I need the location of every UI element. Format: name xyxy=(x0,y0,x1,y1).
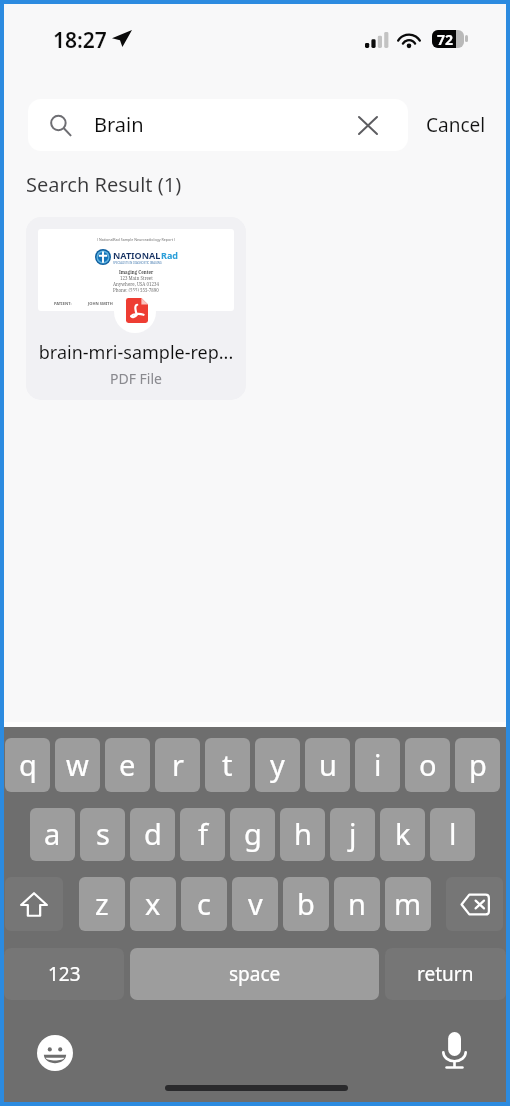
staticText: p xyxy=(469,745,487,784)
button[interactable]: a xyxy=(30,808,75,861)
staticText: u xyxy=(319,745,337,784)
staticText: w xyxy=(66,745,89,784)
button[interactable]: ( NationalRad Sample Neuroradiology Repo… xyxy=(26,217,246,400)
staticText: Anywhere, USA 01234 xyxy=(113,281,159,287)
button[interactable]: Clear search xyxy=(352,109,384,141)
staticText: v xyxy=(248,884,263,923)
staticText: n xyxy=(348,884,366,923)
staticText: 123 xyxy=(48,961,81,987)
staticText: g xyxy=(244,814,262,853)
button[interactable]: p xyxy=(455,738,500,792)
staticText: f xyxy=(198,814,208,853)
button[interactable]: v xyxy=(232,877,278,931)
staticText: PDF File xyxy=(26,369,246,388)
button[interactable]: 123 xyxy=(4,948,124,1000)
button[interactable]: q xyxy=(5,738,50,792)
staticText: JOHN SMITH xyxy=(88,301,113,306)
button[interactable]: j xyxy=(330,808,375,861)
button[interactable]: o xyxy=(405,738,450,792)
button[interactable]: d xyxy=(130,808,175,861)
button[interactable]: z xyxy=(79,877,125,931)
button[interactable]: Backspace xyxy=(446,877,503,931)
button[interactable]: Emoji keyboard xyxy=(37,1035,73,1071)
staticText: NATIONAL xyxy=(113,249,161,261)
button[interactable]: e xyxy=(105,738,150,792)
staticText: l xyxy=(449,814,457,853)
staticText: d xyxy=(144,814,162,853)
staticText: 123 Main Street xyxy=(120,275,153,281)
staticText: y xyxy=(270,745,285,784)
button[interactable]: u xyxy=(305,738,350,792)
button[interactable]: Shift xyxy=(5,877,63,931)
staticText: a xyxy=(44,814,61,853)
staticText: x xyxy=(145,884,161,923)
button[interactable]: t xyxy=(205,738,250,792)
button[interactable]: return xyxy=(385,948,506,1000)
staticText: z xyxy=(95,884,109,923)
staticText: return xyxy=(417,961,474,987)
button[interactable]: r xyxy=(155,738,200,792)
button[interactable]: n xyxy=(334,877,380,931)
staticText: 72 xyxy=(437,30,454,48)
staticText: b xyxy=(297,884,315,923)
button[interactable]: h xyxy=(280,808,325,861)
staticText: r xyxy=(172,745,184,784)
staticText: m xyxy=(394,884,422,923)
button[interactable]: Dictation xyxy=(442,1032,467,1070)
staticText: Cancel xyxy=(426,112,486,138)
staticText: e xyxy=(119,745,136,784)
staticText: Imaging Center xyxy=(119,269,154,275)
staticText: i xyxy=(374,745,382,784)
button[interactable]: x xyxy=(130,877,176,931)
button[interactable]: b xyxy=(283,877,329,931)
staticText: 18:27 xyxy=(53,26,107,55)
button[interactable]: w xyxy=(55,738,100,792)
staticText: j xyxy=(349,814,357,853)
staticText: SPECIALISTS IN DIAGNOSTIC IMAGING xyxy=(113,261,162,265)
button[interactable]: g xyxy=(230,808,275,861)
staticText: s xyxy=(96,814,110,853)
button[interactable]: Cancel xyxy=(420,99,492,151)
button[interactable]: s xyxy=(80,808,125,861)
staticText: c xyxy=(197,884,211,923)
button[interactable]: m xyxy=(385,877,431,931)
staticText: ( NationalRad Sample Neuroradiology Repo… xyxy=(97,237,175,242)
button[interactable]: k xyxy=(380,808,425,861)
button[interactable]: c xyxy=(181,877,227,931)
staticText: q xyxy=(19,745,37,784)
staticText: k xyxy=(395,814,411,853)
staticText: Brain xyxy=(94,111,144,138)
staticText: brain-mri-sample-rep... xyxy=(26,340,246,365)
staticText: Rad xyxy=(161,249,178,261)
staticText: PATIENT: xyxy=(54,301,72,306)
button[interactable]: f xyxy=(180,808,225,861)
button[interactable]: l xyxy=(430,808,475,861)
button[interactable]: y xyxy=(255,738,300,792)
button[interactable]: i xyxy=(355,738,400,792)
staticText: t xyxy=(222,745,233,784)
staticText: o xyxy=(419,745,437,784)
staticText: h xyxy=(294,814,312,853)
button[interactable]: space xyxy=(130,948,379,1000)
staticText: Phone: (555) 555-7890 xyxy=(113,287,159,293)
staticText: space xyxy=(229,961,281,987)
staticText: Search Result (1) xyxy=(26,171,182,198)
button[interactable]: Brain xyxy=(28,99,408,151)
